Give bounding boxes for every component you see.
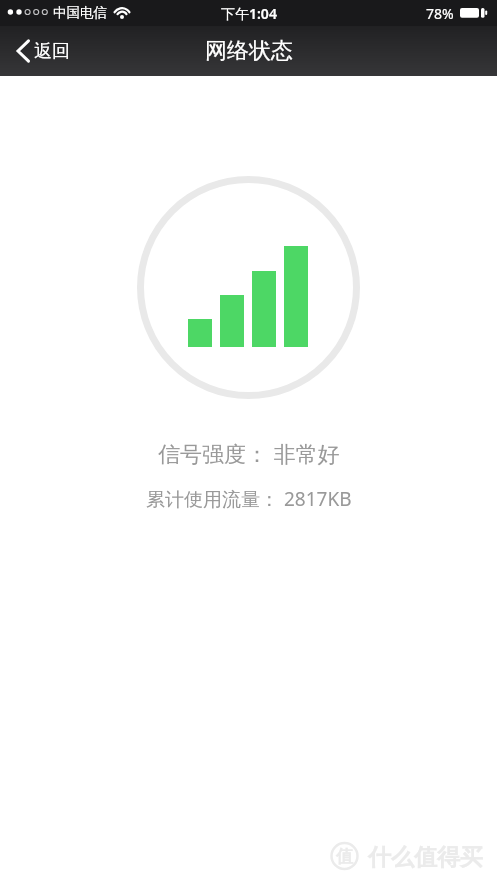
staticText: 值 [336, 846, 353, 867]
staticText: 信号强度： 非常好 [158, 438, 340, 468]
staticText: 下午1:04 [221, 4, 277, 23]
staticText: 累计使用流量： 2817KB [146, 486, 352, 512]
staticText: 什么值得买 [368, 843, 483, 872]
staticText: 网络状态 [205, 37, 293, 65]
staticText: 中国电信 [53, 4, 107, 21]
button[interactable]: 返回 [0, 36, 70, 66]
staticText: 返回 [34, 40, 70, 63]
staticText: 78% [426, 4, 454, 23]
